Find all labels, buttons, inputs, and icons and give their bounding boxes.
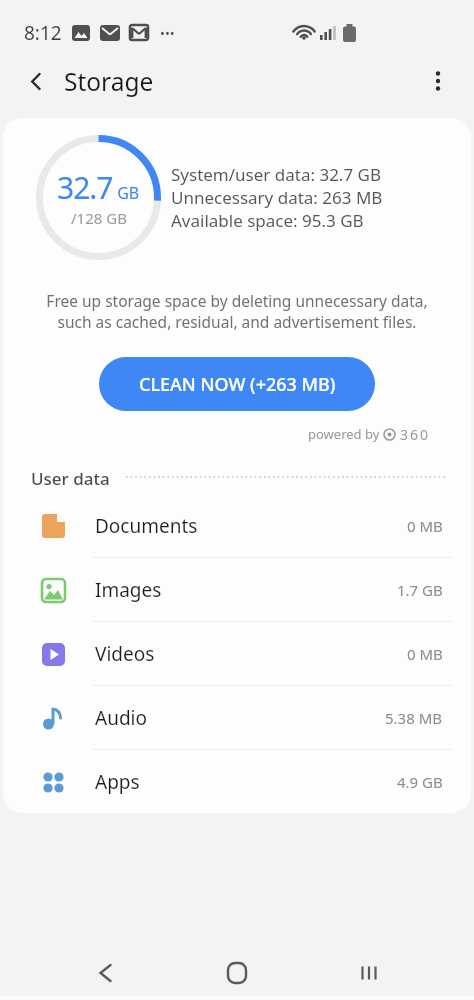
button[interactable]	[16, 61, 56, 101]
staticText: 360	[400, 425, 431, 443]
staticText: Storage	[64, 65, 154, 98]
staticText: Audio	[95, 705, 147, 731]
staticText: GB	[113, 182, 140, 204]
button[interactable]: Audio	[3, 686, 471, 750]
staticText: User data	[31, 467, 110, 487]
staticText: 0 MB	[407, 644, 443, 664]
staticText: Apps	[95, 769, 140, 795]
staticText: 4.9 GB	[397, 772, 443, 792]
staticText: powered by	[308, 425, 383, 443]
staticText: 32.7	[57, 167, 113, 208]
staticText: /128 GB	[71, 208, 127, 228]
button[interactable]: Videos	[3, 622, 471, 686]
staticText: System/user data: 32.7 GB	[171, 163, 381, 186]
staticText: 0 MB	[407, 516, 443, 536]
staticText: Videos	[95, 641, 155, 667]
staticText: Documents	[95, 513, 198, 539]
button[interactable]: CLEAN NOW (+263 MB)	[99, 357, 375, 411]
staticText: 1.7 GB	[397, 580, 443, 600]
staticText: Free up storage space by deleting unnece…	[23, 290, 451, 333]
staticText: •••	[160, 24, 175, 42]
staticText: 5.38 MB	[385, 708, 443, 728]
button[interactable]	[214, 950, 260, 996]
staticText: CLEAN NOW (+263 MB)	[139, 372, 336, 397]
button[interactable]: Apps	[3, 750, 471, 813]
button[interactable]	[82, 950, 128, 996]
button[interactable]: Documents	[3, 494, 471, 558]
button[interactable]	[418, 61, 458, 101]
staticText: Images	[95, 577, 162, 603]
button[interactable]	[346, 950, 392, 996]
staticText: Available space: 95.3 GB	[171, 209, 364, 232]
staticText: Unnecessary data: 263 MB	[171, 186, 383, 209]
staticText: 8:12	[24, 20, 62, 46]
button[interactable]: Images	[3, 558, 471, 622]
